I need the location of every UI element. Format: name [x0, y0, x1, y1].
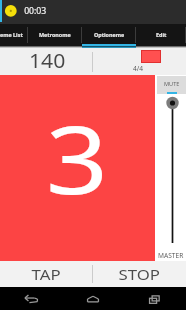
staticText: 3: [46, 94, 108, 222]
button[interactable]: 3: [0, 75, 155, 261]
staticText: MUTE: [164, 80, 180, 88]
button[interactable]: STOP: [93, 261, 186, 287]
button[interactable]: MUTE: [157, 76, 186, 94]
button[interactable]: 4/4: [93, 48, 186, 75]
button[interactable]: Edit: [136, 24, 186, 46]
staticText: 00:03: [24, 5, 47, 16]
button[interactable]: 140: [0, 48, 93, 75]
staticText: Edit: [156, 31, 167, 38]
button[interactable]: Optioneme: [82, 24, 136, 46]
staticText: eme List: [0, 31, 23, 38]
staticText: STOP: [118, 265, 160, 284]
staticText: Optioneme: [94, 31, 125, 38]
staticText: 140: [29, 47, 66, 74]
staticText: Metronome: [39, 31, 71, 38]
button[interactable]: TAP: [0, 261, 93, 287]
staticText: 4/4: [133, 64, 143, 73]
button[interactable]: Home: [75, 287, 111, 310]
button[interactable]: Metronome: [28, 24, 82, 46]
button[interactable]: Back: [13, 287, 49, 310]
staticText: MASTER: [158, 251, 184, 260]
button[interactable]: Recent apps: [137, 287, 173, 310]
button[interactable]: eme List: [0, 24, 28, 46]
staticText: TAP: [31, 265, 61, 284]
button[interactable]: Master volume: [155, 75, 186, 261]
